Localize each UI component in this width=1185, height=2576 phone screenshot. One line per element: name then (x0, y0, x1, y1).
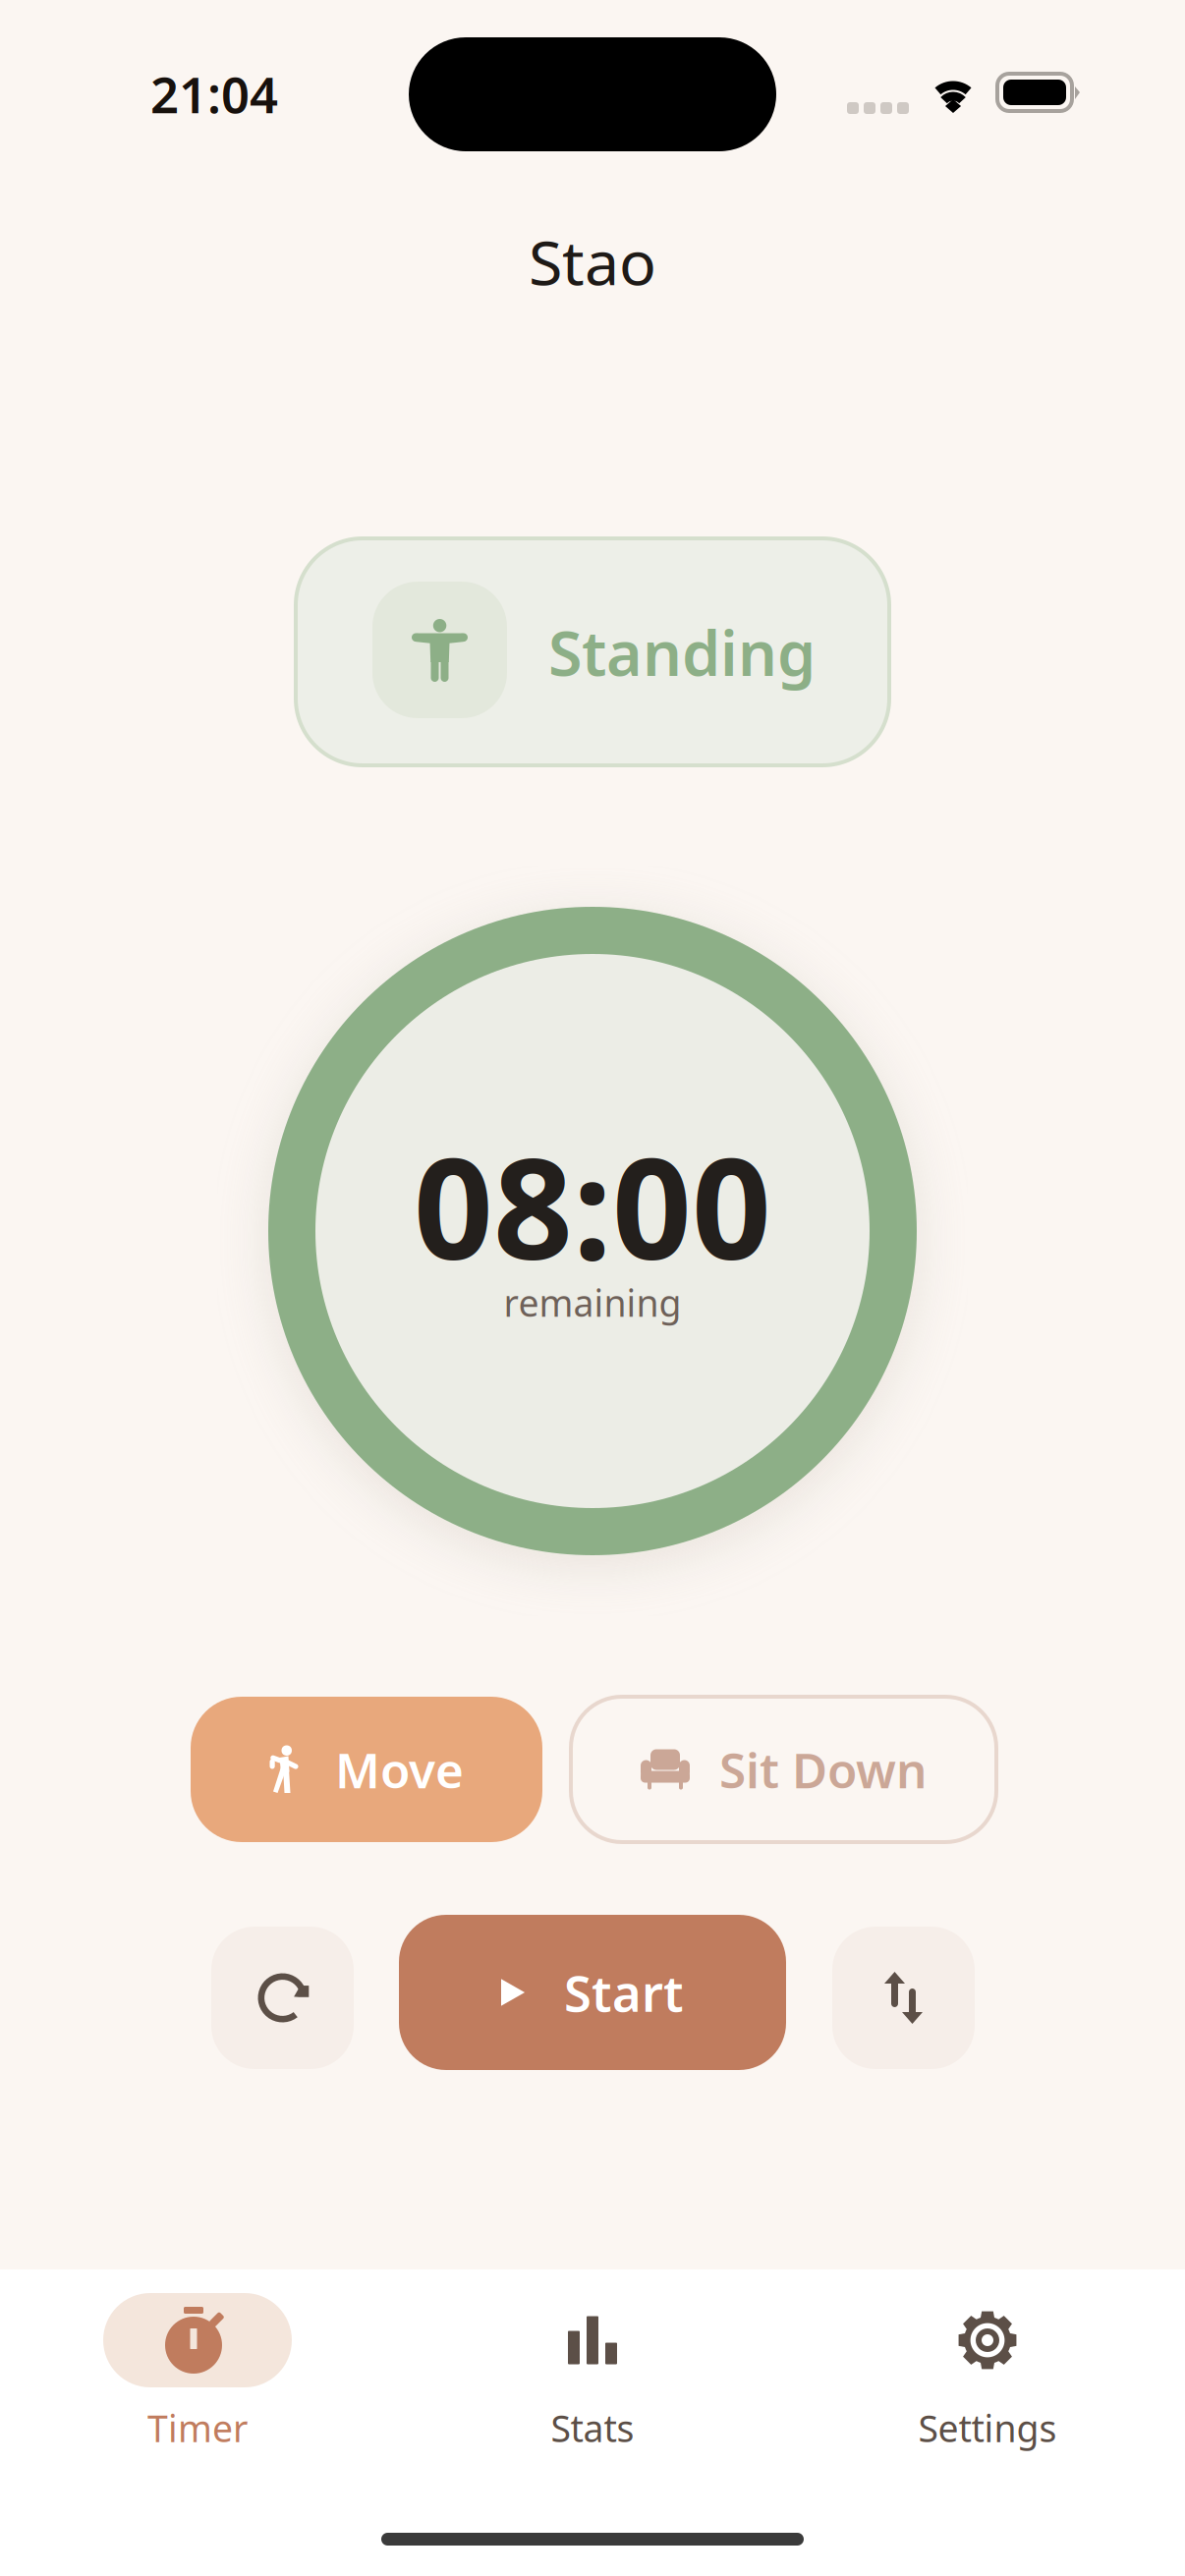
staticText: Move (335, 1737, 464, 1802)
staticText: remaining (504, 1278, 681, 1327)
button[interactable]: Settings (790, 2293, 1185, 2452)
staticText: 21:04 (150, 61, 278, 127)
button[interactable]: Reset timer (211, 1927, 354, 2069)
button[interactable]: Switch posture (832, 1927, 975, 2069)
button[interactable]: Standing (296, 538, 889, 765)
staticText: Timer (147, 2403, 248, 2452)
staticText: Stats (551, 2403, 634, 2452)
staticText: 08:00 (414, 1114, 771, 1298)
button[interactable]: Stats (395, 2293, 790, 2452)
button[interactable]: Start (399, 1915, 786, 2070)
staticText: Start (564, 1959, 684, 2026)
staticText: Standing (548, 611, 816, 693)
staticText: Stao (529, 220, 656, 302)
staticText: Settings (918, 2403, 1057, 2452)
button[interactable]: Move (191, 1697, 542, 1842)
staticText: Sit Down (719, 1737, 927, 1802)
button[interactable]: Sit Down (571, 1697, 996, 1842)
button[interactable]: Timer (0, 2293, 395, 2452)
